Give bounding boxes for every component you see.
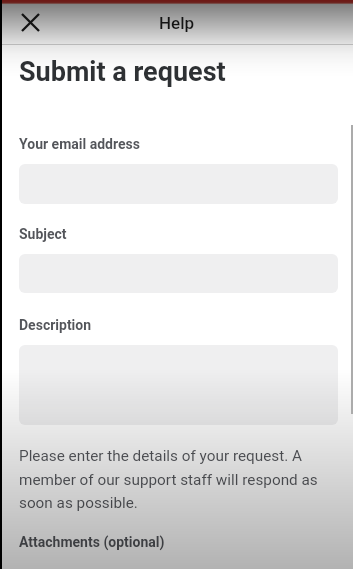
staticText: Submit a request [19, 56, 226, 88]
staticText: Please enter the details of your request… [19, 447, 329, 511]
staticText: Your email address [19, 136, 140, 152]
button[interactable] [19, 345, 338, 425]
button[interactable]: Close [15, 7, 45, 37]
staticText: Subject [19, 226, 67, 242]
staticText: Description [19, 317, 92, 333]
staticText: Help [159, 13, 195, 33]
staticText: Attachments (optional) [19, 534, 165, 550]
